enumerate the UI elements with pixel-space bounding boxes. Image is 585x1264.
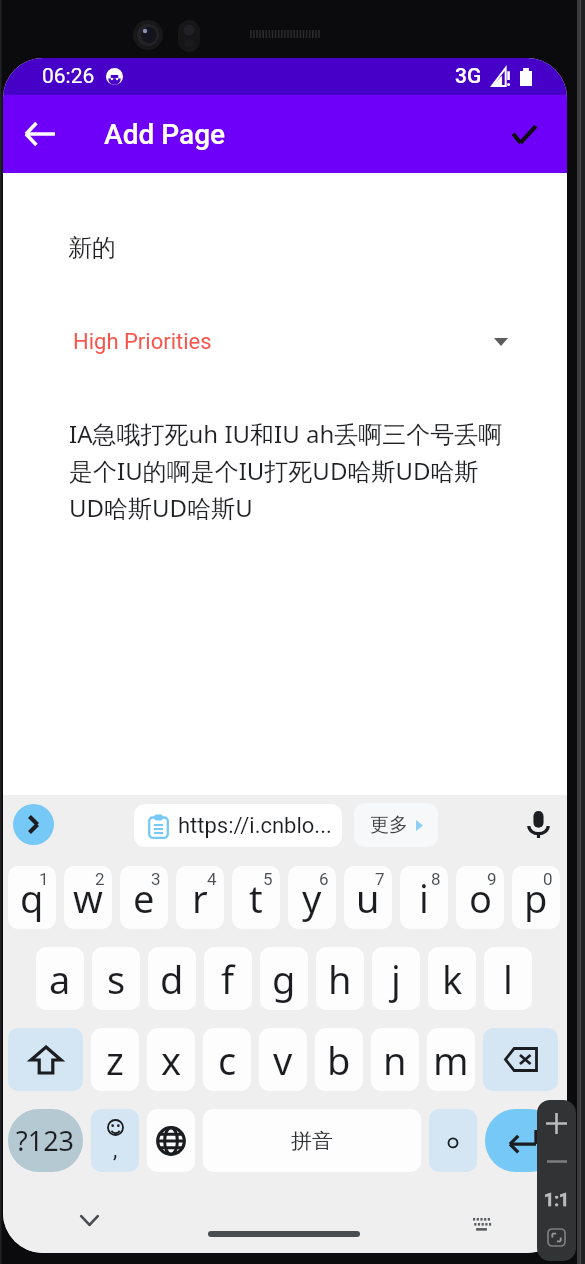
staticText: o bbox=[469, 872, 492, 924]
button[interactable]: Voice input bbox=[515, 801, 561, 847]
button[interactable]: t bbox=[232, 866, 280, 929]
staticText: d bbox=[160, 953, 184, 1005]
button[interactable]: i bbox=[400, 866, 448, 929]
button[interactable]: k bbox=[428, 947, 476, 1010]
button[interactable]: m bbox=[427, 1028, 475, 1091]
button[interactable]: Change language bbox=[147, 1109, 195, 1172]
button[interactable]: Done bbox=[485, 95, 563, 173]
staticText: 1 bbox=[39, 869, 49, 889]
staticText: 新的 bbox=[68, 233, 116, 263]
button[interactable]: f bbox=[204, 947, 252, 1010]
staticText: 06:26 bbox=[42, 64, 95, 89]
staticText: 3 bbox=[151, 869, 161, 889]
staticText: p bbox=[524, 872, 548, 924]
staticText: a bbox=[49, 953, 71, 1005]
button[interactable]: Backspace bbox=[483, 1028, 558, 1091]
button[interactable]: Switch input method bbox=[457, 1209, 505, 1239]
staticText: 9 bbox=[487, 869, 497, 889]
button[interactable]: Zoom in bbox=[537, 1110, 576, 1136]
staticText: c bbox=[218, 1034, 237, 1086]
staticText: j bbox=[391, 953, 401, 1005]
button[interactable]: v bbox=[259, 1028, 307, 1091]
staticText: 5 bbox=[263, 869, 273, 889]
staticText: , bbox=[113, 1137, 118, 1163]
staticText: b bbox=[327, 1034, 351, 1086]
button[interactable]: l bbox=[484, 947, 532, 1010]
staticText: i bbox=[419, 872, 429, 924]
button[interactable]: j bbox=[372, 947, 420, 1010]
staticText: 拼音 bbox=[291, 1128, 333, 1154]
button[interactable]: Hide keyboard bbox=[65, 1203, 113, 1237]
staticText: e bbox=[133, 872, 155, 924]
staticText: k bbox=[442, 953, 463, 1005]
staticText: z bbox=[106, 1034, 124, 1086]
staticText: Add Page bbox=[104, 118, 226, 151]
staticText: High Priorities bbox=[73, 329, 212, 355]
button[interactable]: Back bbox=[3, 95, 75, 173]
button[interactable]: g bbox=[260, 947, 308, 1010]
staticText: w bbox=[73, 872, 103, 924]
staticText: u bbox=[356, 872, 380, 924]
button[interactable]: e bbox=[120, 866, 168, 929]
button[interactable]: s bbox=[92, 947, 140, 1010]
button[interactable]: h bbox=[316, 947, 364, 1010]
button[interactable]: r bbox=[176, 866, 224, 929]
staticText: https://i.cnblo... bbox=[178, 813, 332, 839]
button[interactable]: b bbox=[315, 1028, 363, 1091]
button[interactable]: z bbox=[91, 1028, 139, 1091]
button[interactable]: 1:1 bbox=[537, 1186, 576, 1212]
staticText: q bbox=[20, 872, 44, 924]
staticText: h bbox=[328, 953, 352, 1005]
button[interactable]: Zoom out bbox=[537, 1150, 576, 1172]
staticText: g bbox=[272, 953, 296, 1005]
button[interactable] bbox=[429, 1109, 477, 1172]
button[interactable]: Fullscreen bbox=[537, 1224, 576, 1250]
staticText: t bbox=[249, 872, 263, 924]
staticText: 0 bbox=[543, 869, 553, 889]
staticText: v bbox=[273, 1034, 293, 1086]
staticText: l bbox=[503, 953, 513, 1005]
button[interactable]: q bbox=[8, 866, 56, 929]
button[interactable]: , bbox=[91, 1109, 139, 1172]
button[interactable]: w bbox=[64, 866, 112, 929]
button[interactable]: https://i.cnblo... bbox=[134, 804, 342, 847]
staticText: 1:1 bbox=[544, 1189, 570, 1210]
staticText: n bbox=[383, 1034, 407, 1086]
staticText: x bbox=[161, 1034, 182, 1086]
button[interactable]: a bbox=[36, 947, 84, 1010]
staticText: s bbox=[107, 953, 126, 1005]
button[interactable]: x bbox=[147, 1028, 195, 1091]
button[interactable]: p bbox=[512, 866, 560, 929]
button[interactable]: Expand suggestions bbox=[13, 804, 54, 845]
staticText: f bbox=[221, 953, 235, 1005]
button[interactable]: 拼音 bbox=[203, 1109, 421, 1172]
staticText: 3G bbox=[455, 64, 482, 89]
staticText: ?123 bbox=[16, 1122, 75, 1159]
staticText: m bbox=[433, 1034, 469, 1086]
button[interactable]: d bbox=[148, 947, 196, 1010]
staticText: r bbox=[192, 872, 208, 924]
button[interactable]: u bbox=[344, 866, 392, 929]
button[interactable]: ?123 bbox=[8, 1109, 83, 1172]
button[interactable]: n bbox=[371, 1028, 419, 1091]
button[interactable]: c bbox=[203, 1028, 251, 1091]
staticText: 7 bbox=[375, 869, 385, 889]
staticText: 8 bbox=[431, 869, 441, 889]
staticText: y bbox=[302, 872, 322, 924]
button[interactable]: 更多 bbox=[354, 803, 438, 847]
staticText: 2 bbox=[95, 869, 105, 889]
staticText: 4 bbox=[207, 869, 217, 889]
button[interactable]: Enter bbox=[485, 1109, 560, 1172]
button[interactable]: o bbox=[456, 866, 504, 929]
button[interactable]: High Priorities bbox=[73, 322, 508, 362]
button[interactable]: Shift bbox=[8, 1028, 83, 1091]
staticText: 6 bbox=[319, 869, 329, 889]
staticText: 更多 bbox=[370, 813, 408, 837]
button[interactable]: y bbox=[288, 866, 336, 929]
staticText: IA急哦打死uh IU和IU ah丢啊三个号丢啊是个IU的啊是个IU打死UD哈斯… bbox=[69, 417, 508, 524]
